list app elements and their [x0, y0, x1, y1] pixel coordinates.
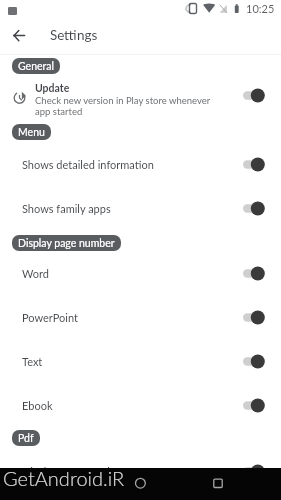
button[interactable]: Toggle [243, 260, 265, 286]
staticText: Display page number [22, 465, 243, 478]
staticText: General [18, 60, 54, 73]
button[interactable]: Home [128, 471, 153, 496]
button[interactable]: Shows detailed information [0, 142, 281, 186]
staticText: Menu [18, 126, 45, 139]
button[interactable]: Toggle [243, 304, 265, 330]
staticText: Check new version in Play store whenever… [35, 95, 212, 117]
staticText: Text [22, 355, 243, 368]
button[interactable]: Toggle [243, 458, 265, 484]
staticText: Shows family apps [22, 202, 243, 215]
staticText: PowerPoint [22, 311, 243, 324]
button[interactable]: Recents [206, 471, 231, 496]
staticText: 10:25 [246, 2, 275, 15]
button[interactable]: Ebook [0, 383, 281, 427]
staticText: Display page number [18, 237, 115, 250]
button[interactable]: Word [0, 251, 281, 295]
staticText: Shows detailed information [22, 158, 243, 171]
button[interactable]: Pdf [12, 430, 40, 446]
button[interactable]: Toggle [243, 392, 265, 418]
button[interactable]: Back [3, 22, 32, 54]
button[interactable]: Text [0, 339, 281, 383]
staticText: Pdf [18, 432, 34, 445]
button[interactable]: Shows family apps [0, 186, 281, 230]
button[interactable]: General [12, 58, 60, 74]
button[interactable]: Toggle [243, 151, 265, 177]
staticText: Word [22, 267, 243, 280]
button[interactable]: PowerPoint [0, 295, 281, 339]
button[interactable]: Menu [12, 124, 51, 140]
button[interactable]: Update [0, 74, 281, 122]
staticText: Update [35, 82, 70, 95]
button[interactable]: Toggle [243, 348, 265, 374]
button[interactable]: Display page number [0, 449, 281, 493]
staticText: Settings [50, 27, 98, 43]
staticText: Ebook [22, 399, 243, 412]
button[interactable]: Toggle [243, 195, 265, 221]
staticText: GetAndroid.iR [3, 466, 125, 490]
button[interactable]: Toggle [243, 82, 265, 108]
button[interactable]: Display page number [12, 235, 121, 251]
